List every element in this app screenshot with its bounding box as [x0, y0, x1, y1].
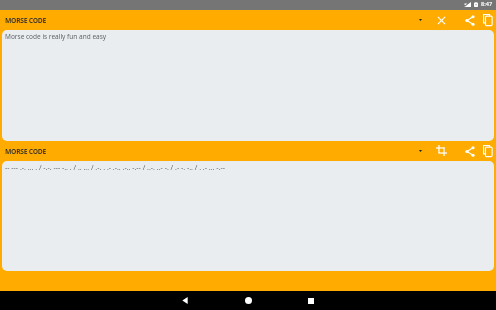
button[interactable]: Share	[463, 141, 477, 161]
button[interactable]: Clear	[434, 10, 448, 30]
button[interactable]: Recent apps	[289, 291, 333, 310]
button[interactable]: Copy	[481, 141, 495, 161]
button[interactable]: Share	[463, 10, 477, 30]
staticText: MORSE CODE	[5, 16, 46, 25]
button[interactable]: Back	[163, 291, 207, 310]
button[interactable]: Crop	[434, 141, 448, 161]
staticText: Morse code is really fun and easy	[5, 32, 107, 41]
staticText: -- --- .-. ... . / -.-. --- -.. . / .. .…	[5, 163, 225, 173]
staticText: MORSE CODE	[5, 147, 46, 156]
button[interactable]: Copy	[481, 10, 495, 30]
button[interactable]: Select language	[415, 141, 426, 161]
button[interactable]: -- --- .-. ... . / -.-. --- -.. . / .. .…	[2, 161, 494, 271]
button[interactable]: Home	[226, 291, 270, 310]
button[interactable]: MORSE CODE	[0, 10, 50, 30]
staticText: 8:47	[481, 0, 493, 8]
button[interactable]: Select language	[415, 10, 426, 30]
button[interactable]: Morse code is really fun and easy	[2, 30, 494, 141]
button[interactable]: MORSE CODE	[0, 141, 50, 161]
